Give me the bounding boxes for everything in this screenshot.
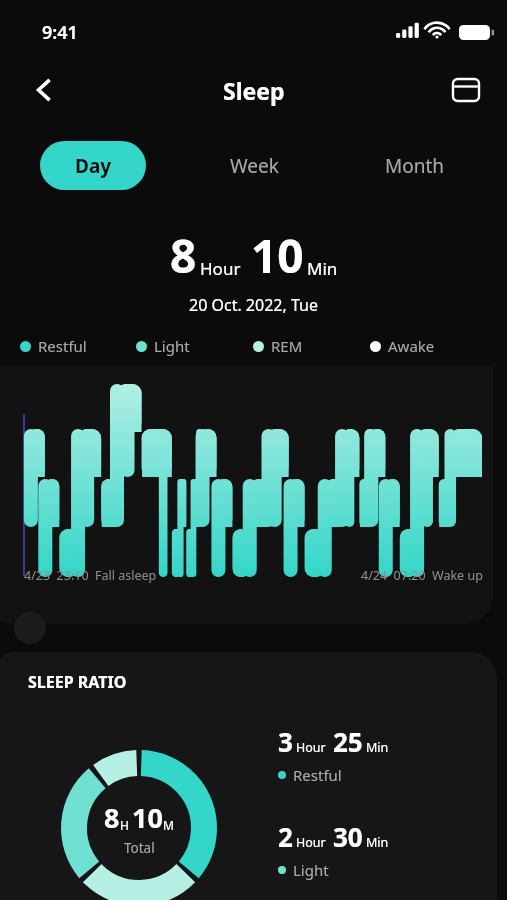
staticText: Day	[75, 153, 112, 179]
staticText: 10	[251, 224, 304, 287]
button[interactable]: Month	[355, 141, 475, 190]
staticText: Awake	[388, 336, 435, 356]
button[interactable]: Calendar	[445, 69, 487, 111]
staticText: 8	[104, 799, 120, 836]
staticText: Month	[385, 153, 445, 179]
staticText: 4/23 23:10 Fall asleep	[24, 567, 157, 584]
staticText: Sleep	[223, 75, 285, 106]
staticText: 8	[170, 224, 197, 287]
staticText: Hour	[296, 739, 326, 756]
staticText: Total	[124, 839, 155, 857]
button[interactable]: Back	[22, 67, 68, 113]
button[interactable]: Week	[196, 141, 312, 190]
staticText: 20 Oct. 2022, Tue	[189, 294, 318, 316]
staticText: Restful	[38, 336, 87, 356]
staticText: Min	[366, 739, 389, 756]
staticText: 2	[278, 819, 293, 854]
staticText: Hour	[296, 834, 326, 851]
staticText: 30	[333, 819, 363, 854]
staticText: 25	[333, 724, 363, 759]
staticText: REM	[271, 336, 303, 356]
staticText: 3	[278, 724, 293, 759]
staticText: 9:41	[42, 20, 78, 45]
staticText: Week	[230, 153, 279, 179]
staticText: SLEEP RATIO	[28, 671, 127, 693]
staticText: 10	[132, 799, 163, 836]
staticText: Min	[366, 834, 389, 851]
staticText: Light	[154, 336, 190, 356]
staticText: Hour	[200, 257, 241, 280]
staticText: 4/24 07:20 Wake up	[361, 567, 483, 584]
button[interactable]: Day	[40, 141, 146, 190]
staticText: Restful	[293, 765, 342, 785]
staticText: Light	[293, 860, 329, 880]
staticText: M	[163, 817, 174, 833]
staticText: H	[120, 817, 129, 833]
staticText: Min	[307, 257, 338, 280]
